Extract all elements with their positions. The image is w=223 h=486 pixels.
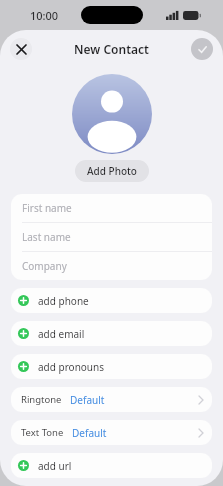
staticText: Company: [22, 259, 67, 273]
staticText: add phone: [38, 294, 89, 308]
button[interactable]: Done: [191, 38, 213, 60]
staticText: Add Photo: [87, 164, 137, 178]
button[interactable]: Last name: [11, 223, 212, 251]
staticText: Last name: [22, 230, 71, 244]
staticText: add url: [38, 459, 72, 473]
staticText: Text Tone: [21, 426, 64, 439]
staticText: Default: [70, 393, 105, 407]
button[interactable]: add phone: [11, 288, 212, 313]
button[interactable]: add pronouns: [11, 354, 212, 379]
staticText: Ringtone: [21, 393, 62, 406]
button[interactable]: Company: [11, 252, 212, 280]
button[interactable]: First name: [11, 194, 212, 222]
staticText: add pronouns: [38, 360, 105, 374]
button[interactable]: Ringtone: [11, 387, 212, 412]
staticText: 10:00: [30, 8, 59, 23]
button[interactable]: Close: [10, 38, 32, 60]
button[interactable]: Text Tone: [11, 420, 212, 445]
button[interactable]: Add Photo: [75, 160, 149, 182]
staticText: Default: [72, 426, 107, 440]
staticText: First name: [22, 201, 72, 215]
staticText: add email: [38, 327, 85, 341]
button[interactable]: add email: [11, 321, 212, 346]
button[interactable]: add url: [11, 453, 212, 478]
staticText: New Contact: [74, 41, 149, 57]
